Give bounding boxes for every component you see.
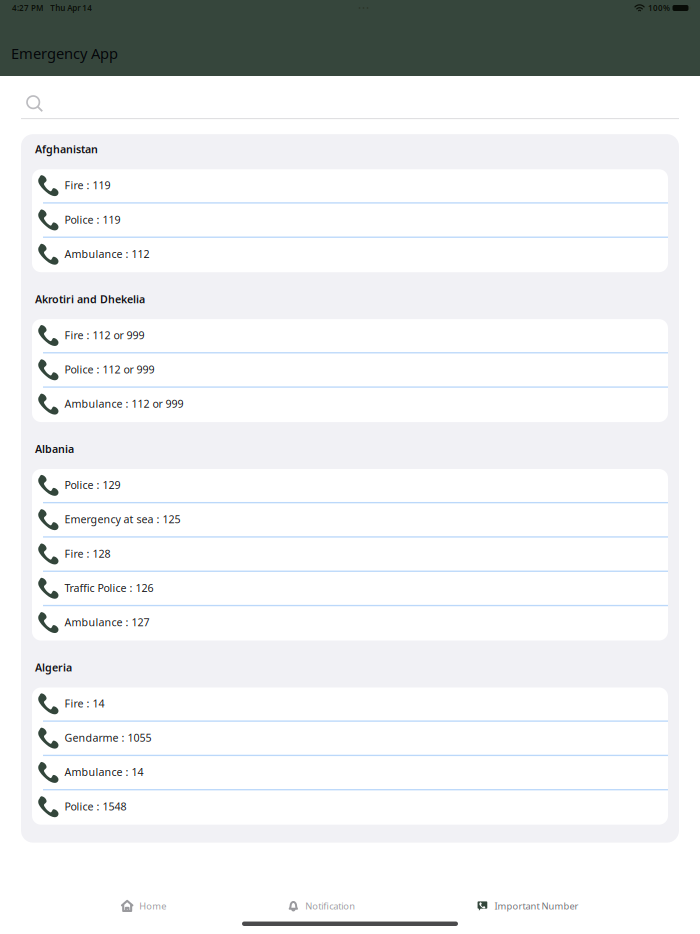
button[interactable]: Fire : 119: [32, 169, 668, 204]
staticText: Police : 112 or 999: [64, 362, 154, 376]
staticText: Traffic Police : 126: [64, 581, 153, 595]
staticText: 100%: [648, 3, 670, 13]
button[interactable]: Fire : 128: [32, 538, 668, 572]
button[interactable]: Notification: [288, 895, 355, 917]
staticText: Ambulance : 112: [64, 247, 149, 261]
button[interactable]: Ambulance : 14: [32, 756, 668, 790]
button[interactable]: Fire : 14: [32, 687, 668, 722]
button[interactable]: Emergency at sea : 125: [32, 503, 668, 538]
staticText: Emergency App: [11, 43, 118, 63]
button[interactable]: Ambulance : 112: [32, 238, 668, 272]
button[interactable]: Ambulance : 112 or 999: [32, 388, 668, 422]
staticText: Afghanistan: [35, 142, 98, 156]
staticText: Police : 119: [64, 212, 120, 227]
staticText: Algeria: [35, 660, 72, 674]
staticText: Fire : 14: [64, 696, 104, 710]
button[interactable]: Ambulance : 127: [32, 606, 668, 640]
staticText: Fire : 119: [64, 178, 110, 192]
staticText: Notification: [305, 900, 355, 912]
button[interactable]: Police : 1548: [32, 790, 668, 825]
button[interactable]: Home: [122, 895, 166, 917]
staticText: Fire : 112 or 999: [64, 328, 144, 342]
staticText: Police : 129: [64, 478, 120, 492]
staticText: Home: [139, 900, 166, 912]
staticText: 4:27 PM: [12, 3, 43, 13]
staticText: Gendarme : 1055: [64, 731, 151, 745]
staticText: Emergency at sea : 125: [64, 512, 180, 526]
staticText: Important Number: [494, 900, 578, 912]
staticText: Ambulance : 112 or 999: [64, 397, 183, 411]
staticText: Fire : 128: [64, 546, 110, 561]
button[interactable]: Police : 119: [32, 204, 668, 238]
button[interactable]: Fire : 112 or 999: [32, 319, 668, 353]
button[interactable]: Important Number: [477, 895, 578, 917]
button[interactable]: Gendarme : 1055: [32, 722, 668, 756]
staticText: Thu Apr 14: [50, 3, 92, 13]
button[interactable]: Traffic Police : 126: [32, 572, 668, 606]
staticText: Albania: [35, 442, 74, 456]
button[interactable]: Police : 129: [32, 469, 668, 503]
staticText: Ambulance : 127: [64, 615, 149, 629]
button[interactable]: Police : 112 or 999: [32, 353, 668, 388]
staticText: Ambulance : 14: [64, 765, 143, 779]
staticText: Police : 1548: [64, 799, 126, 813]
staticText: Akrotiri and Dhekelia: [35, 292, 145, 306]
